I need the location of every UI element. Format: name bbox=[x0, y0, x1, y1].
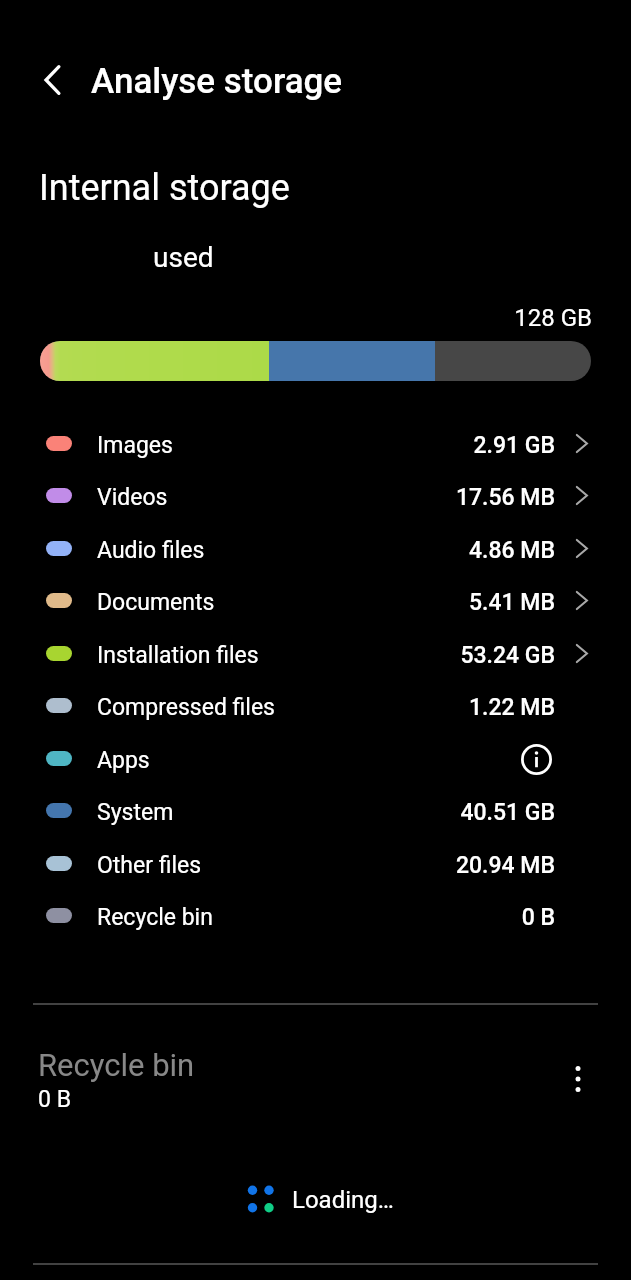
staticText: 40.51 GB bbox=[0, 799, 555, 826]
staticText: 1.22 MB bbox=[0, 694, 555, 721]
staticText: 20.94 MB bbox=[0, 852, 555, 879]
staticText: 0 B bbox=[38, 1086, 71, 1113]
staticText: Loading… bbox=[292, 1186, 394, 1214]
staticText: Recycle bin bbox=[38, 1047, 195, 1083]
staticText: Documents bbox=[97, 589, 215, 616]
button[interactable]: Recycle bin bbox=[0, 1023, 631, 1133]
button[interactable]: Apps info bbox=[514, 737, 558, 781]
staticText: Internal storage bbox=[39, 167, 290, 209]
staticText: used bbox=[153, 241, 214, 274]
button[interactable]: System bbox=[0, 784, 631, 837]
staticText: System bbox=[97, 799, 174, 826]
button[interactable]: Other files bbox=[0, 837, 631, 890]
staticText: 2.91 GB bbox=[0, 432, 555, 459]
button[interactable]: Back bbox=[25, 53, 79, 107]
staticText: Compressed files bbox=[97, 694, 275, 721]
staticText: 128 GB bbox=[0, 304, 592, 332]
staticText: Recycle bin bbox=[97, 904, 213, 931]
staticText: Audio files bbox=[97, 537, 205, 564]
button[interactable]: More options bbox=[555, 1056, 601, 1102]
button[interactable]: Documents bbox=[0, 574, 631, 627]
staticText: 4.86 MB bbox=[0, 537, 555, 564]
staticText bbox=[0, 747, 555, 774]
staticText: Analyse storage bbox=[91, 61, 343, 102]
button[interactable]: Audio files bbox=[0, 522, 631, 575]
staticText: 0 B bbox=[0, 904, 555, 931]
button[interactable]: Installation files bbox=[0, 627, 631, 680]
button[interactable]: Compressed files bbox=[0, 679, 631, 732]
staticText: 5.41 MB bbox=[0, 589, 555, 616]
staticText: Installation files bbox=[97, 642, 259, 669]
button[interactable]: Videos bbox=[0, 469, 631, 522]
staticText: Images bbox=[97, 432, 173, 459]
staticText: Other files bbox=[97, 852, 202, 879]
button[interactable]: Images bbox=[0, 417, 631, 470]
button[interactable]: Apps bbox=[0, 732, 631, 785]
button[interactable]: Recycle bin bbox=[0, 889, 631, 942]
staticText: 17.56 MB bbox=[0, 484, 555, 511]
staticText: Videos bbox=[97, 484, 168, 511]
staticText: Apps bbox=[97, 747, 150, 774]
staticText: 53.24 GB bbox=[0, 642, 555, 669]
